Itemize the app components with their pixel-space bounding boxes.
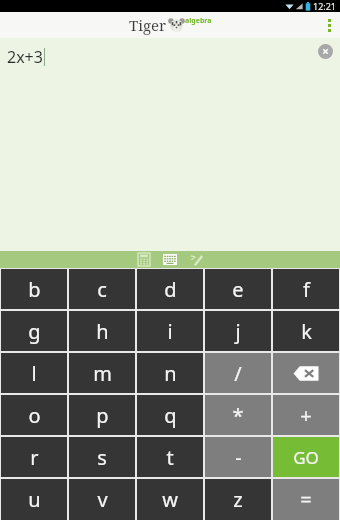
staticText: m <box>93 360 112 387</box>
button[interactable]: Keyboard <box>157 251 183 268</box>
button[interactable]: k <box>273 311 339 351</box>
staticText: algebra <box>185 16 212 26</box>
staticText: v <box>97 486 108 513</box>
staticText: g <box>28 318 41 345</box>
staticText: z <box>233 486 243 513</box>
button[interactable]: c <box>69 269 135 309</box>
staticText: d <box>164 276 177 303</box>
button[interactable]: j <box>205 311 271 351</box>
staticText: w <box>162 486 178 513</box>
button[interactable]: More options <box>318 12 340 38</box>
button[interactable]: o <box>1 395 67 435</box>
staticText: + <box>300 402 312 429</box>
button[interactable]: GO <box>273 437 339 477</box>
button[interactable]: Clear input <box>318 44 333 59</box>
button[interactable]: e <box>205 269 271 309</box>
staticText: r <box>30 444 39 471</box>
button[interactable]: = <box>273 479 339 520</box>
staticText: o <box>28 402 41 429</box>
staticText: h <box>96 318 109 345</box>
button[interactable]: z <box>205 479 271 520</box>
staticText: k <box>301 318 312 345</box>
staticText: GO <box>293 446 319 469</box>
button[interactable]: m <box>69 353 135 393</box>
button[interactable]: r <box>1 437 67 477</box>
button[interactable]: u <box>1 479 67 520</box>
staticText: i <box>167 318 173 345</box>
button[interactable]: g <box>1 311 67 351</box>
staticText: 12:21 <box>313 0 337 12</box>
button[interactable]: f <box>273 269 339 309</box>
button[interactable]: Draw <box>183 251 209 268</box>
staticText: * <box>232 402 244 429</box>
button[interactable]: - <box>205 437 271 477</box>
button[interactable]: d <box>137 269 203 309</box>
button[interactable]: q <box>137 395 203 435</box>
staticText: u <box>28 486 41 513</box>
button[interactable]: i <box>137 311 203 351</box>
staticText: b <box>28 276 41 303</box>
staticText: = <box>300 486 312 513</box>
staticText: p <box>96 402 109 429</box>
button[interactable]: v <box>69 479 135 520</box>
button[interactable]: Calculator <box>131 251 157 268</box>
button[interactable]: w <box>137 479 203 520</box>
staticText: / <box>234 360 242 387</box>
button[interactable]: p <box>69 395 135 435</box>
staticText: 2x+3 <box>7 46 43 68</box>
staticText: n <box>164 360 177 387</box>
staticText: - <box>235 444 242 471</box>
staticText: t <box>166 444 174 471</box>
button[interactable]: t <box>137 437 203 477</box>
button[interactable]: n <box>137 353 203 393</box>
staticText: e <box>232 276 244 303</box>
staticText: s <box>97 444 107 471</box>
staticText: Tiger <box>129 15 167 35</box>
button[interactable]: / <box>205 353 271 393</box>
button[interactable]: 2x+3 <box>0 38 340 251</box>
button[interactable]: b <box>1 269 67 309</box>
staticText: f <box>303 276 310 303</box>
staticText: q <box>164 402 177 429</box>
staticText: j <box>235 318 241 345</box>
button[interactable]: + <box>273 395 339 435</box>
staticText: c <box>97 276 107 303</box>
button[interactable]: l <box>1 353 67 393</box>
button[interactable]: Backspace <box>273 353 339 393</box>
button[interactable]: h <box>69 311 135 351</box>
staticText: l <box>31 360 37 387</box>
button[interactable]: s <box>69 437 135 477</box>
button[interactable]: * <box>205 395 271 435</box>
